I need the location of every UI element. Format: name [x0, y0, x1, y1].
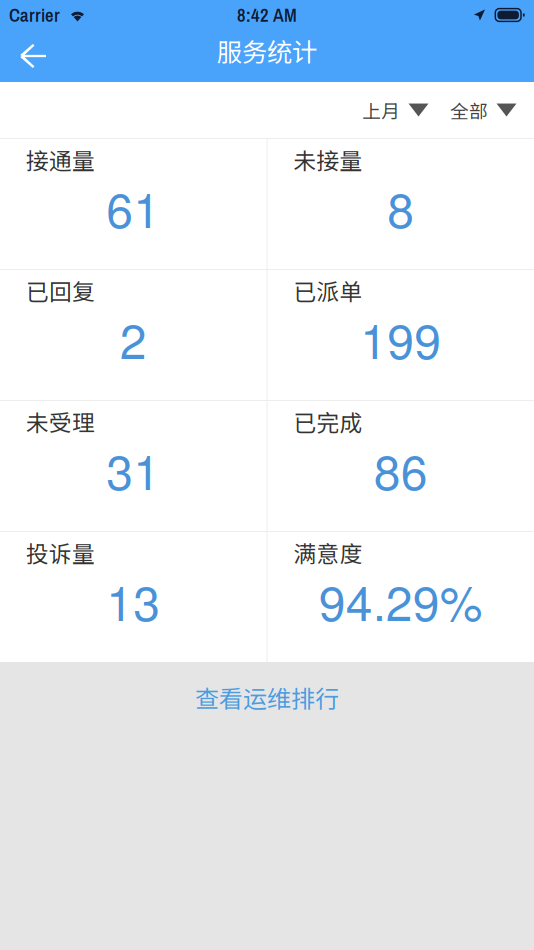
- button[interactable]: 上月: [362, 86, 429, 133]
- staticText: 已回复: [26, 274, 95, 307]
- button[interactable]: 已派单: [267, 270, 534, 400]
- button[interactable]: 未接量: [267, 139, 534, 269]
- staticText: 94.29%: [319, 566, 483, 634]
- button[interactable]: 未受理: [0, 401, 266, 531]
- staticText: 查看运维排行: [195, 680, 339, 715]
- button[interactable]: 已回复: [0, 270, 266, 400]
- staticText: 8: [387, 173, 414, 241]
- staticText: 已完成: [293, 405, 362, 438]
- staticText: 已派单: [293, 274, 362, 307]
- staticText: 8:42 AM: [237, 2, 297, 27]
- staticText: Carrier: [9, 2, 60, 27]
- staticText: 31: [106, 435, 160, 503]
- staticText: 未接量: [293, 143, 362, 176]
- staticText: 199: [360, 304, 441, 372]
- staticText: 13: [106, 566, 160, 634]
- button[interactable]: Back: [0, 30, 61, 82]
- staticText: 接通量: [26, 143, 95, 176]
- staticText: 61: [106, 173, 160, 241]
- staticText: 未受理: [26, 405, 95, 438]
- button[interactable]: 查看运维排行: [0, 662, 534, 745]
- button[interactable]: 已完成: [267, 401, 534, 531]
- staticText: 服务统计: [217, 32, 317, 69]
- staticText: 上月: [362, 96, 400, 123]
- staticText: 投诉量: [26, 536, 95, 569]
- button[interactable]: 接通量: [0, 139, 266, 269]
- staticText: 全部: [450, 96, 488, 123]
- staticText: 2: [120, 304, 147, 372]
- staticText: 86: [374, 435, 428, 503]
- button[interactable]: 满意度: [267, 532, 534, 662]
- button[interactable]: 全部: [429, 86, 517, 133]
- staticText: 满意度: [293, 536, 362, 569]
- button[interactable]: 投诉量: [0, 532, 266, 662]
